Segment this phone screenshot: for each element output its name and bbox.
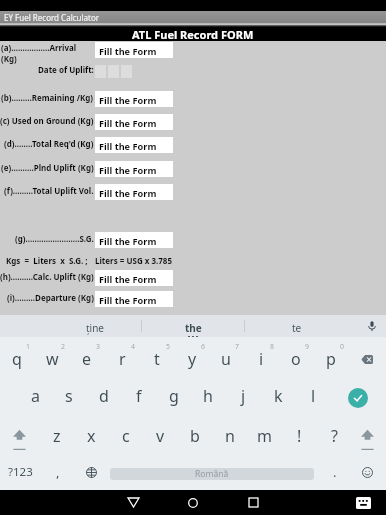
staticText: 9 [305,342,310,352]
staticText: te [292,321,302,335]
button[interactable]: Home [163,490,223,515]
staticText: Fill the Form [99,140,157,153]
button[interactable]: z [40,417,74,455]
button[interactable]: 4 [105,340,139,378]
staticText: ATL Fuel Record FORM [132,27,254,41]
button[interactable]: 1 [0,340,34,378]
button[interactable]: Shift [2,421,36,459]
button[interactable]: k [261,377,295,415]
button[interactable]: ?123 [2,453,38,491]
button[interactable]: g [157,377,191,415]
button[interactable]: x [74,417,108,455]
button[interactable]: Recent apps [223,490,283,515]
button[interactable]: d [87,377,121,415]
staticText: ! [297,425,302,447]
staticText: (g)........................S.G. [15,233,94,244]
button[interactable]: m [247,417,281,455]
button[interactable]: Voice input [358,315,386,337]
button[interactable]: 6 [175,340,209,378]
button[interactable]: j [226,377,260,415]
staticText: t [154,348,160,370]
staticText: x [87,425,96,447]
staticText: b [190,425,200,447]
staticText: Liters = USG x 3.785 [95,255,173,266]
button[interactable]: 3 [70,340,104,378]
button[interactable]: l [296,377,330,415]
staticText: Fill the Form [99,94,157,107]
button[interactable]: Change language [74,453,108,491]
staticText: 0 [340,342,345,352]
staticText: ține [86,321,105,335]
staticText: (c) Used on Ground (Kg) [0,115,94,126]
button[interactable]: v [143,417,177,455]
staticText: l [311,385,316,407]
staticText: f [136,385,142,407]
button[interactable]: ? [317,417,351,455]
button[interactable]: a [18,377,52,415]
staticText: (a).................Arrival [1,42,77,53]
button[interactable]: 5 [140,340,174,378]
button[interactable]: Back [103,490,163,515]
button[interactable]: Switch keyboard [356,497,371,509]
button[interactable]: c [109,417,143,455]
staticText: Fill the Form [99,164,157,177]
staticText: Fill the Form [99,117,157,130]
staticText: 8 [270,342,275,352]
button[interactable]: , [41,453,75,491]
staticText: 6 [201,342,206,352]
staticText: q [12,348,22,370]
staticText: EY Fuel Record Calculator [4,12,100,23]
button[interactable]: Emoji [350,453,384,491]
button[interactable]: Fill the Form [95,114,173,130]
button[interactable]: Fill the Form [95,270,173,286]
button[interactable]: Fill the Form [95,137,173,153]
staticText: Fill the Form [99,235,157,248]
staticText: ? [331,425,338,447]
button[interactable]: 0 [314,340,348,378]
button[interactable]: b [178,417,212,455]
staticText: Fill the Form [99,187,157,200]
button[interactable]: 9 [279,340,313,378]
button[interactable]: Shift [350,421,384,459]
button[interactable]: Fill the Form [95,42,173,58]
staticText: (b).........Remaining /Kg) [1,92,94,103]
button[interactable]: te [245,321,349,337]
button[interactable]: 7 [209,340,243,378]
button[interactable]: 8 [244,340,278,378]
button[interactable]: 2 [35,340,69,378]
staticText: 1 [26,342,31,352]
button[interactable]: h [191,377,225,415]
button[interactable]: Backspace [350,340,384,378]
button[interactable]: Română [110,468,314,480]
button[interactable]: Fill the Form [95,91,173,107]
staticText: (f).........Total Uplift Vol. [4,185,94,196]
button[interactable]: Fill the Form [95,184,173,200]
button[interactable]: f [122,377,156,415]
staticText: Fill the Form [99,273,157,286]
staticText: , [56,463,60,481]
button[interactable]: Fill the Form [95,291,173,307]
staticText: u [221,348,231,370]
button[interactable]: Fill the Form [95,232,173,248]
staticText: Fill the Form [99,294,157,307]
staticText: 7 [235,342,240,352]
staticText: g [169,385,179,407]
button[interactable]: ! [282,417,316,455]
staticText: p [326,348,336,370]
staticText: n [225,425,235,447]
button[interactable]: the [142,321,244,337]
button[interactable]: n [213,417,247,455]
button[interactable]: Fill the Form [95,161,173,177]
staticText: i [259,348,264,370]
staticText: o [291,348,301,370]
button[interactable]: ține [50,321,141,337]
button[interactable]: Enter [341,379,375,417]
button[interactable]: s [52,377,86,415]
staticText: c [122,425,130,447]
button[interactable]: . [318,453,352,491]
staticText: e [82,348,92,370]
staticText: (i).........Departure (Kg) [7,292,94,303]
